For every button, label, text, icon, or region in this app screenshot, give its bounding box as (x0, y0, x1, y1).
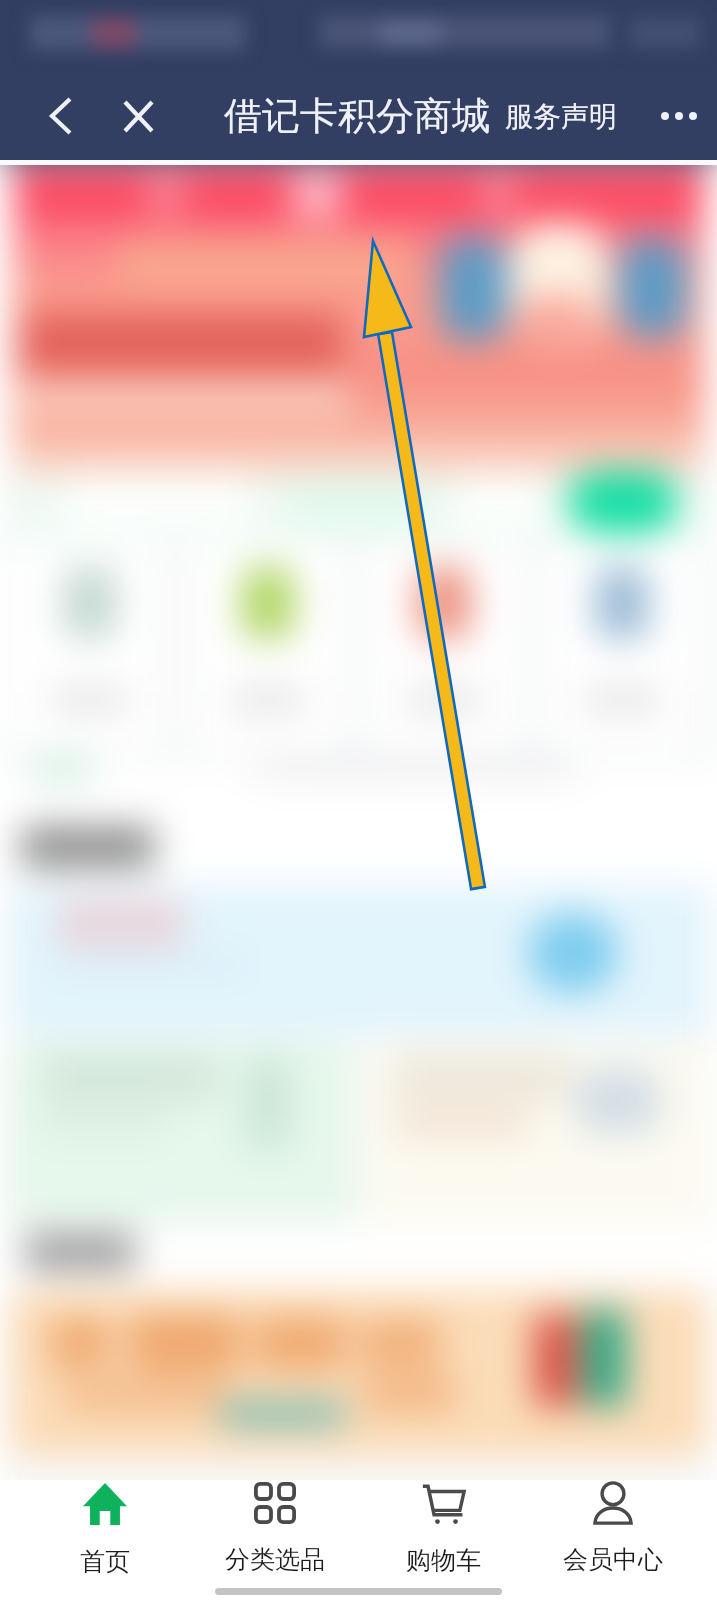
button[interactable] (8, 885, 709, 1035)
button[interactable]: 购物车 (359, 1480, 528, 1575)
button[interactable] (8, 1041, 354, 1225)
button[interactable]: 首页 (20, 1480, 190, 1575)
staticText: 分类选品 (225, 1544, 325, 1575)
button[interactable] (568, 471, 678, 533)
button[interactable] (6, 545, 166, 750)
button[interactable] (364, 545, 524, 750)
button[interactable] (60, 474, 255, 530)
button[interactable]: 分类选品 (190, 1480, 359, 1575)
button[interactable]: Back (27, 82, 95, 150)
staticText: 会员中心 (563, 1544, 663, 1575)
button[interactable] (282, 474, 437, 530)
button[interactable] (14, 166, 704, 478)
staticText: 购物车 (406, 1545, 481, 1575)
button[interactable]: More options (645, 82, 713, 150)
button[interactable]: 服务声明 (505, 72, 617, 160)
button[interactable]: 会员中心 (528, 1480, 697, 1575)
button[interactable] (186, 545, 346, 750)
button[interactable] (10, 1290, 707, 1457)
staticText: 借记卡积分商城 (224, 92, 490, 140)
button[interactable]: Close (104, 82, 172, 150)
button[interactable] (452, 474, 547, 530)
button[interactable] (362, 1041, 709, 1225)
staticText: 服务声明 (505, 99, 617, 134)
button[interactable] (542, 545, 702, 750)
staticText: 首页 (80, 1546, 130, 1575)
